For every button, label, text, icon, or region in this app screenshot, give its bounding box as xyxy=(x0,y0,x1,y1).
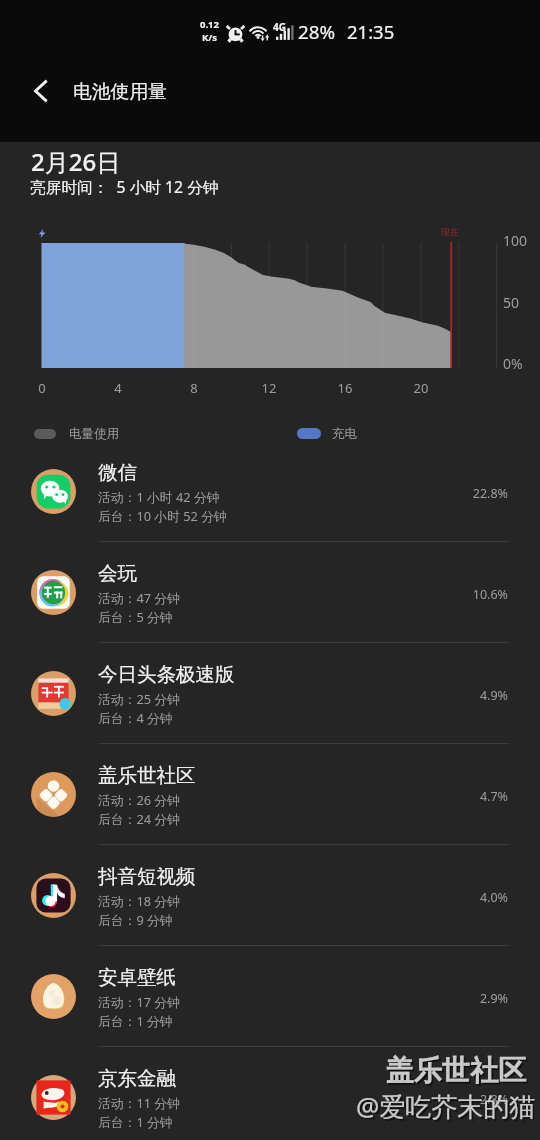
staticText: 28% xyxy=(298,19,336,45)
staticText: 电池使用量 xyxy=(73,80,167,104)
staticText: 0% xyxy=(503,354,523,373)
staticText: 100 xyxy=(503,231,528,250)
button[interactable]: 会玩 xyxy=(0,542,540,643)
button[interactable]: 今日头条极速版 xyxy=(0,643,540,744)
button[interactable]: Back xyxy=(20,70,62,112)
staticText: @爱吃芥末的猫 xyxy=(356,1088,536,1124)
staticText: 微信 xyxy=(98,460,137,485)
button[interactable]: 安卓壁纸 xyxy=(0,946,540,1047)
staticText: @爱吃芥末的猫 xyxy=(358,1090,538,1126)
staticText: 盖乐世社区 xyxy=(98,763,196,788)
staticText: 4.9% xyxy=(438,687,508,704)
staticText: 2.8% xyxy=(438,1091,508,1108)
staticText: 抖音短视频 xyxy=(98,864,196,889)
staticText: 0.12 xyxy=(197,18,222,31)
staticText: 活动：1 小时 42 分钟 xyxy=(98,488,220,505)
staticText: 活动：47 分钟 xyxy=(98,589,180,606)
staticText: 10.6% xyxy=(438,586,508,603)
staticText: 盖乐世社区 xyxy=(388,1055,528,1090)
staticText: 活动：26 分钟 xyxy=(98,791,180,808)
staticText: 后台：1 分钟 xyxy=(98,1012,173,1029)
staticText: 4 xyxy=(103,379,133,397)
staticText: 2月26日 xyxy=(31,145,121,178)
staticText: 亮屏时间： 5 小时 12 分钟 xyxy=(30,176,219,197)
staticText: 后台：1 分钟 xyxy=(98,1113,173,1130)
staticText: 安卓壁纸 xyxy=(98,965,176,990)
staticText: 活动：11 分钟 xyxy=(98,1094,180,1111)
staticText: 22.8% xyxy=(438,485,508,502)
staticText: 现在 xyxy=(441,226,459,237)
staticText: 后台：9 分钟 xyxy=(98,911,173,928)
staticText: 4.7% xyxy=(438,788,508,805)
staticText: 活动：25 分钟 xyxy=(98,690,180,707)
staticText: 12 xyxy=(254,379,284,397)
button[interactable]: 抖音短视频 xyxy=(0,845,540,946)
staticText: 今日头条极速版 xyxy=(98,662,235,687)
staticText: 后台：4 分钟 xyxy=(98,709,173,726)
staticText: 充电 xyxy=(332,426,358,442)
staticText: 8 xyxy=(179,379,209,397)
button[interactable]: 盖乐世社区 xyxy=(0,744,540,845)
staticText: 京东金融 xyxy=(98,1066,176,1091)
staticText: 16 xyxy=(330,379,360,397)
staticText: 4.0% xyxy=(438,889,508,906)
staticText: 盖乐世社区 xyxy=(386,1053,526,1088)
staticText: 后台：5 分钟 xyxy=(98,608,173,625)
staticText: 电量使用 xyxy=(69,426,120,442)
staticText: 会玩 xyxy=(98,561,137,586)
staticText: 2.9% xyxy=(438,990,508,1007)
staticText: K/s xyxy=(197,31,222,44)
staticText: 4G xyxy=(273,20,286,34)
staticText: 后台：24 分钟 xyxy=(98,810,180,827)
staticText: 20 xyxy=(406,379,436,397)
staticText: 50 xyxy=(503,293,520,312)
staticText: 活动：17 分钟 xyxy=(98,993,180,1010)
staticText: 21:35 xyxy=(347,19,395,44)
staticText: 后台：10 小时 52 分钟 xyxy=(98,507,227,524)
button[interactable]: 京东金融 xyxy=(0,1047,540,1140)
button[interactable]: 微信 xyxy=(0,441,540,542)
staticText: 0 xyxy=(27,379,57,397)
staticText: 活动：18 分钟 xyxy=(98,892,180,909)
